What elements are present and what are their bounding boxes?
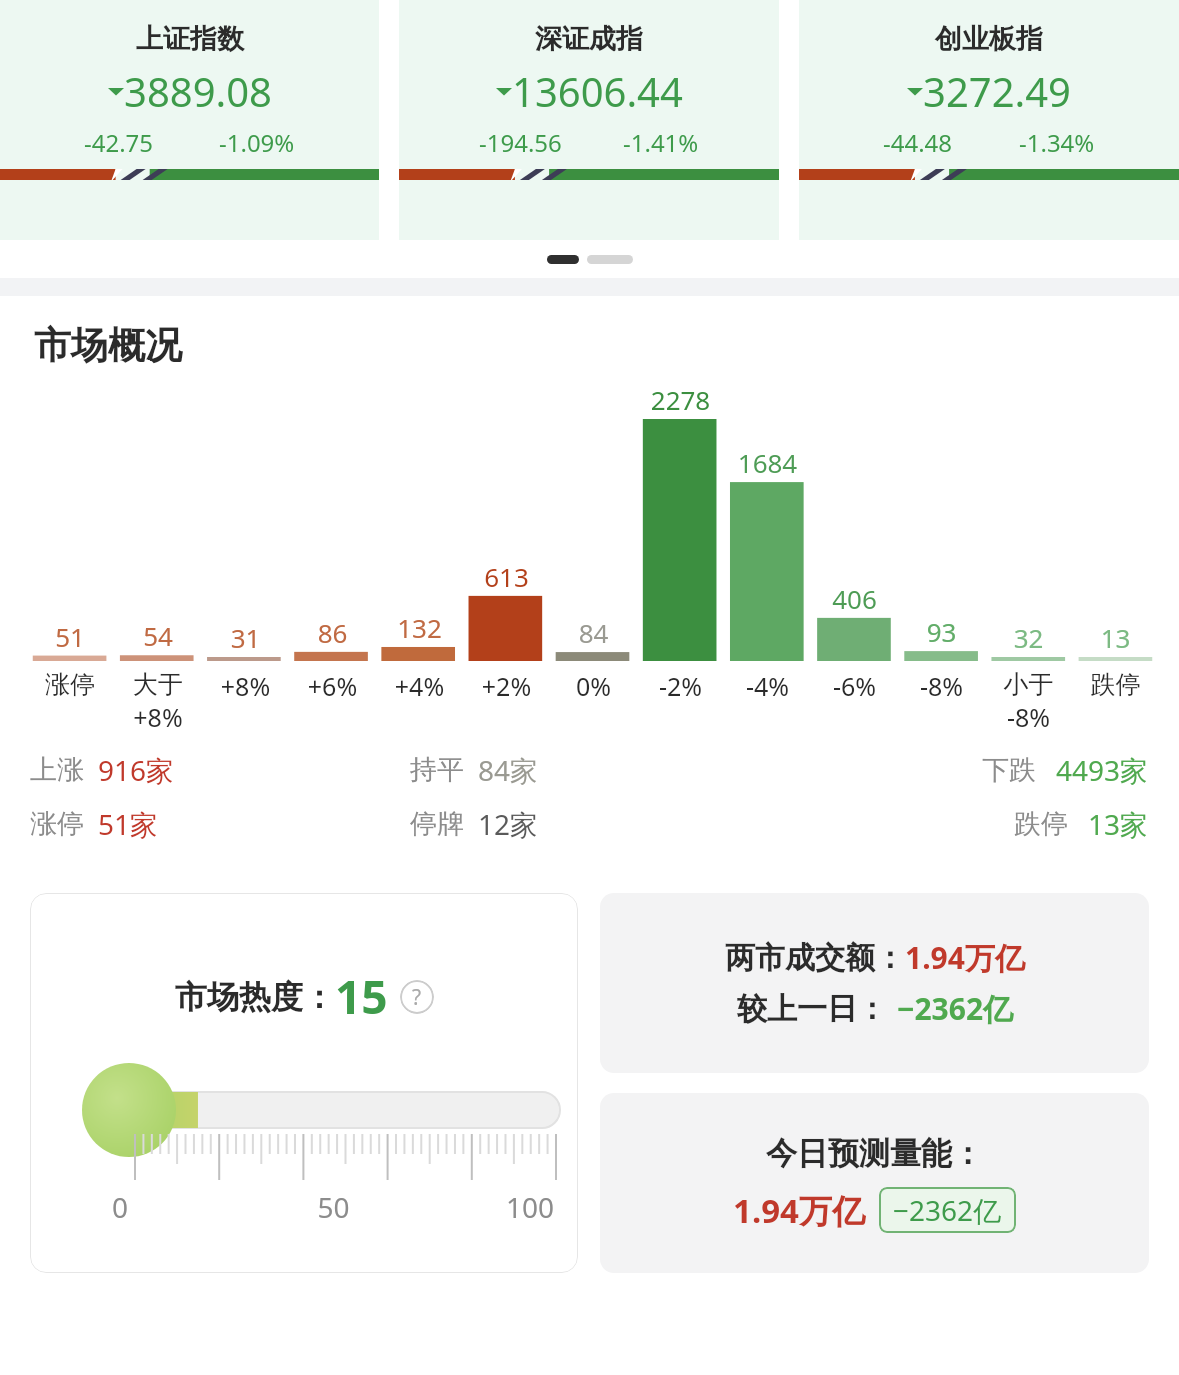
staticText: 51 — [26, 619, 114, 654]
staticText: 跌停 — [1072, 669, 1159, 700]
staticText: −2362亿 — [893, 1191, 1002, 1229]
staticText: +6% — [289, 669, 376, 703]
button[interactable]: 深证成指 — [399, 0, 779, 240]
staticText: 13606.44 — [512, 64, 683, 118]
staticText: -4% — [724, 669, 811, 703]
staticText: +8% — [114, 700, 202, 734]
staticText: 1684 — [724, 445, 811, 480]
staticText: 54 — [114, 618, 202, 653]
staticText: 下跌 — [982, 753, 1036, 787]
staticText: 13 — [1072, 620, 1159, 655]
staticText: 0% — [550, 669, 637, 703]
staticText: 3272.49 — [923, 64, 1071, 118]
staticText: 3889.08 — [124, 64, 272, 118]
staticText: 916家 — [98, 751, 175, 789]
staticText: 0 — [112, 1188, 260, 1226]
staticText: 51家 — [98, 805, 159, 843]
staticText: 今日预测量能： — [766, 1134, 983, 1173]
staticText: 深证成指 — [535, 22, 643, 56]
staticText: +2% — [463, 669, 550, 703]
staticText: 市场概况 — [34, 322, 182, 369]
staticText: 93 — [898, 614, 985, 649]
staticText: 100 — [407, 1188, 554, 1226]
staticText: 132 — [376, 610, 463, 645]
staticText: 持平 — [410, 753, 464, 787]
staticText: 市场热度： — [175, 977, 335, 1017]
button[interactable]: 两市成交额： — [600, 893, 1149, 1073]
staticText: 12家 — [478, 805, 539, 843]
staticText: 2278 — [637, 382, 724, 417]
staticText: 32 — [985, 620, 1072, 655]
staticText: 406 — [811, 581, 898, 616]
staticText: 50 — [260, 1188, 407, 1226]
staticText: 大于 — [114, 669, 202, 700]
staticText: 停牌 — [410, 807, 464, 841]
staticText: -8% — [898, 669, 985, 703]
staticText: -1.09% — [219, 126, 295, 159]
staticText: 创业板指 — [935, 22, 1043, 56]
button[interactable]: 创业板指 — [799, 0, 1179, 240]
staticText: 跌停 — [1014, 807, 1068, 841]
staticText: 涨停 — [26, 669, 114, 700]
staticText: 较上一日： — [737, 990, 887, 1028]
button[interactable]: 市场热度： — [30, 893, 578, 1273]
staticText: 13家 — [1088, 805, 1149, 843]
staticText: +8% — [202, 669, 289, 703]
staticText: 两市成交额： — [725, 939, 905, 977]
staticText: -8% — [985, 700, 1072, 734]
staticText: -1.34% — [1019, 126, 1095, 159]
staticText: 84家 — [478, 751, 539, 789]
staticText: 86 — [289, 615, 376, 650]
staticText: 小于 — [985, 669, 1072, 700]
staticText: -2% — [637, 669, 724, 703]
staticText: -42.75 — [84, 126, 154, 159]
staticText: +4% — [376, 669, 463, 703]
button[interactable]: 上证指数 — [0, 0, 379, 240]
button[interactable]: 今日预测量能： — [600, 1093, 1149, 1273]
staticText: 1.94万亿 — [905, 937, 1025, 978]
button[interactable]: 帮助说明 — [400, 980, 434, 1014]
staticText: 613 — [463, 559, 550, 594]
staticText: -194.56 — [479, 126, 562, 159]
staticText: 15 — [335, 965, 388, 1028]
staticText: 涨停 — [30, 807, 84, 841]
staticText: 1.94万亿 — [733, 1188, 865, 1233]
staticText: -6% — [811, 669, 898, 703]
staticText: ? — [412, 983, 422, 1012]
staticText: -1.41% — [623, 126, 699, 159]
staticText: 上证指数 — [136, 22, 244, 56]
staticText: 上涨 — [30, 753, 84, 787]
staticText: 31 — [202, 620, 289, 655]
staticText: −2362亿 — [897, 988, 1014, 1029]
staticText: 4493家 — [1056, 751, 1149, 789]
staticText: -44.48 — [883, 126, 953, 159]
staticText: 84 — [550, 615, 637, 650]
